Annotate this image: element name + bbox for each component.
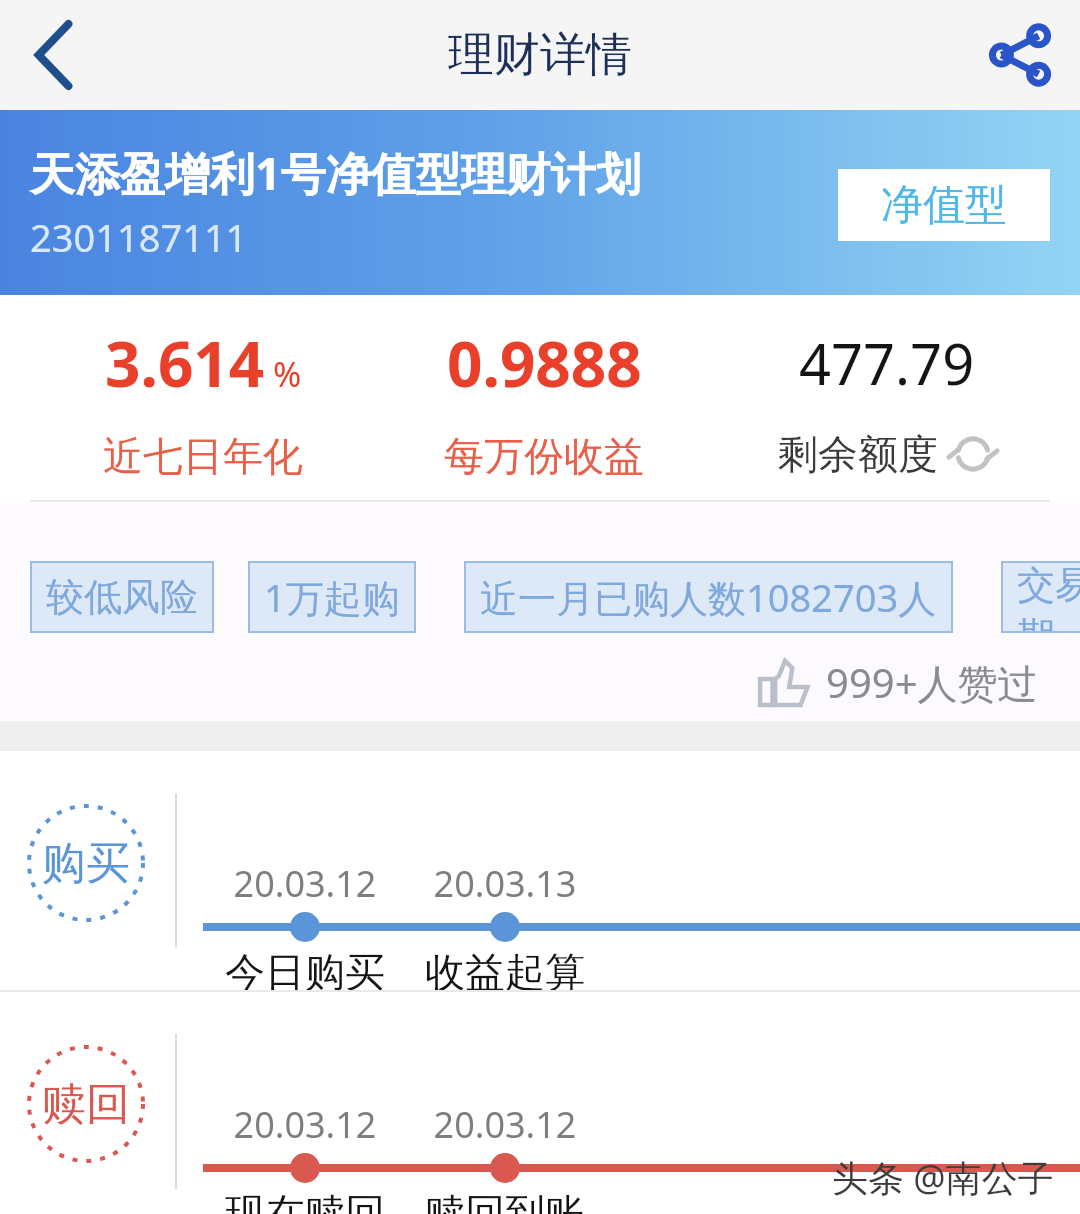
staticText: 理财详情: [448, 26, 632, 84]
staticText: 天添盈增利1号净值型理财计划: [30, 142, 641, 203]
staticText: 999+人赞过: [826, 655, 1038, 710]
staticText: 20.03.13: [405, 859, 605, 908]
staticText: 近一月已购人数1082703人: [480, 571, 937, 623]
staticText: 净值型: [881, 179, 1007, 232]
button[interactable]: 净值型: [838, 169, 1050, 241]
staticText: 头条 @南公子: [832, 1153, 1054, 1202]
staticText: 今日购买: [205, 947, 405, 997]
button[interactable]: 较低风险: [30, 561, 214, 633]
button[interactable]: 交易期: [1001, 561, 1080, 633]
staticText: 2301187111: [30, 211, 248, 263]
button[interactable]: 1万起购: [248, 561, 416, 633]
button[interactable]: 999+人赞过: [758, 655, 1038, 710]
staticText: 3.614: [105, 321, 265, 405]
staticText: 购买: [42, 836, 130, 891]
staticText: %: [273, 351, 302, 397]
staticText: 现在赎回: [205, 1188, 405, 1214]
button[interactable]: 赎回: [0, 992, 1080, 1214]
staticText: 交易期: [1017, 561, 1080, 633]
staticText: 近七日年化: [103, 431, 303, 481]
button[interactable]: Share: [960, 0, 1080, 110]
staticText: 20.03.12: [405, 1100, 605, 1149]
staticText: 每万份收益: [444, 431, 644, 481]
button[interactable]: 购买: [0, 751, 1080, 990]
staticText: 477.79: [799, 325, 975, 401]
staticText: 赎回到账: [405, 1188, 605, 1214]
staticText: 0.9888: [447, 321, 642, 405]
button[interactable]: Refresh: [950, 431, 996, 477]
button[interactable]: 近一月已购人数1082703人: [464, 561, 953, 633]
button[interactable]: Back: [0, 0, 110, 110]
staticText: 1万起购: [264, 571, 400, 623]
staticText: 赎回: [42, 1077, 130, 1132]
staticText: 剩余额度: [778, 429, 938, 479]
staticText: 收益起算: [405, 947, 605, 997]
staticText: 20.03.12: [205, 859, 405, 908]
staticText: 20.03.12: [205, 1100, 405, 1149]
staticText: 较低风险: [46, 573, 198, 621]
